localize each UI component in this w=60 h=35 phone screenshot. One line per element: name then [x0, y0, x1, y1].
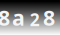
staticText: 8 [43, 3, 55, 32]
staticText: 8 [0, 3, 10, 32]
staticText: a [12, 3, 25, 32]
staticText: 2 [30, 8, 40, 31]
